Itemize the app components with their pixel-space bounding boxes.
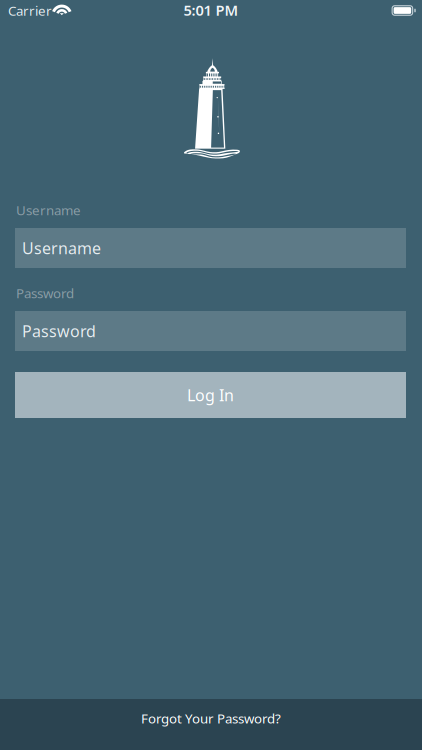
staticText: 5:01 PM: [183, 0, 238, 20]
staticText: Username: [22, 237, 101, 259]
staticText: Forgot Your Password?: [141, 709, 281, 727]
button[interactable]: Forgot Your Password?: [0, 699, 422, 750]
staticText: Carrier: [8, 2, 52, 19]
staticText: Log In: [187, 384, 234, 406]
staticText: Username: [16, 201, 81, 219]
button[interactable]: Log In: [15, 372, 406, 418]
staticText: Password: [16, 284, 74, 302]
staticText: Password: [22, 320, 96, 342]
